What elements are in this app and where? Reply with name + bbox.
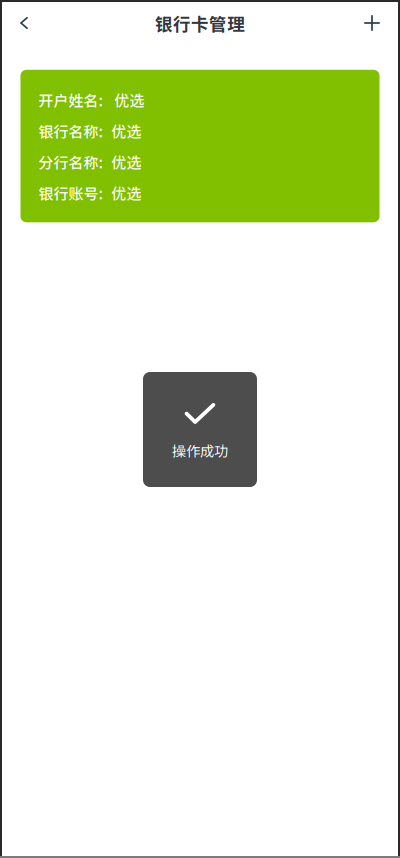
staticText: 优选 (111, 182, 141, 204)
button[interactable]: Add bank card (350, 1, 394, 45)
staticText: 操作成功 (172, 440, 228, 460)
staticText: 银行名称: (38, 120, 102, 142)
staticText: 银行账号: (38, 182, 102, 204)
staticText: 优选 (111, 151, 141, 173)
staticText: 分行名称: (38, 151, 102, 173)
staticText: 优选 (114, 89, 144, 111)
button[interactable]: 开户姓名: (20, 70, 379, 222)
staticText: 优选 (111, 120, 141, 142)
staticText: 开户姓名: (38, 89, 102, 111)
button[interactable]: Back (2, 1, 46, 45)
staticText: 银行卡管理 (155, 10, 245, 36)
